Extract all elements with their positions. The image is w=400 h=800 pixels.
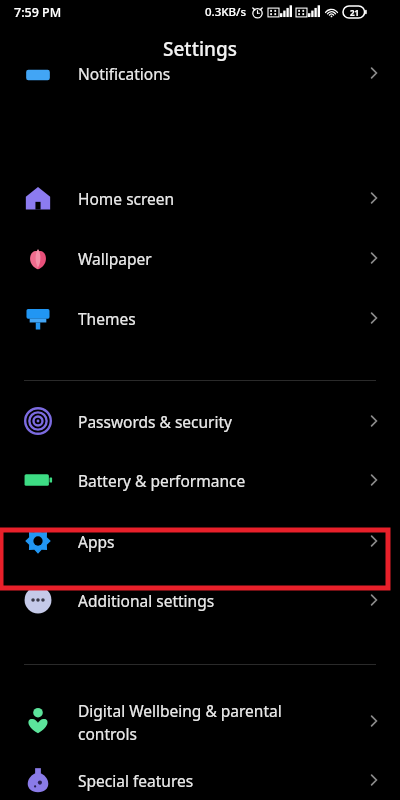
staticText: Apps	[78, 531, 115, 552]
button[interactable]: Additional settings	[0, 574, 400, 626]
staticText: 7:59 PM	[14, 4, 62, 21]
button[interactable]: Themes	[0, 292, 400, 344]
button[interactable]: Battery & performance	[0, 454, 400, 506]
button[interactable]: Wallpaper	[0, 232, 400, 284]
staticText: Notifications	[78, 63, 171, 84]
staticText: 21	[350, 7, 360, 18]
staticText: Wallpaper	[78, 248, 152, 269]
staticText: 0.3KB/s	[205, 4, 247, 20]
button[interactable]: Digital Wellbeing & parental	[0, 692, 400, 750]
staticText: controls	[78, 723, 137, 744]
button[interactable]: Apps	[0, 515, 400, 567]
button[interactable]: Special features	[0, 754, 400, 800]
staticText: Battery & performance	[78, 470, 246, 491]
staticText: Special features	[78, 770, 194, 791]
staticText: Settings	[163, 36, 237, 62]
staticText: Digital Wellbeing & parental	[78, 700, 282, 721]
button[interactable]: Home screen	[0, 172, 400, 224]
staticText: Passwords & security	[78, 411, 233, 432]
staticText: Home screen	[78, 188, 175, 209]
staticText: Themes	[78, 308, 136, 329]
button[interactable]: Passwords & security	[0, 395, 400, 447]
staticText: Additional settings	[78, 590, 215, 611]
button[interactable]: Notifications	[0, 72, 400, 98]
